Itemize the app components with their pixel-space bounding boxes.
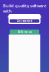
staticText: Get started [16, 19, 32, 23]
staticText: Talk to us [17, 30, 31, 34]
button[interactable]: Talk to us [10, 29, 39, 34]
staticText: Build quality software with [3, 3, 46, 14]
button[interactable]: Get started [10, 19, 39, 23]
staticText: a team that cares [7, 14, 41, 19]
